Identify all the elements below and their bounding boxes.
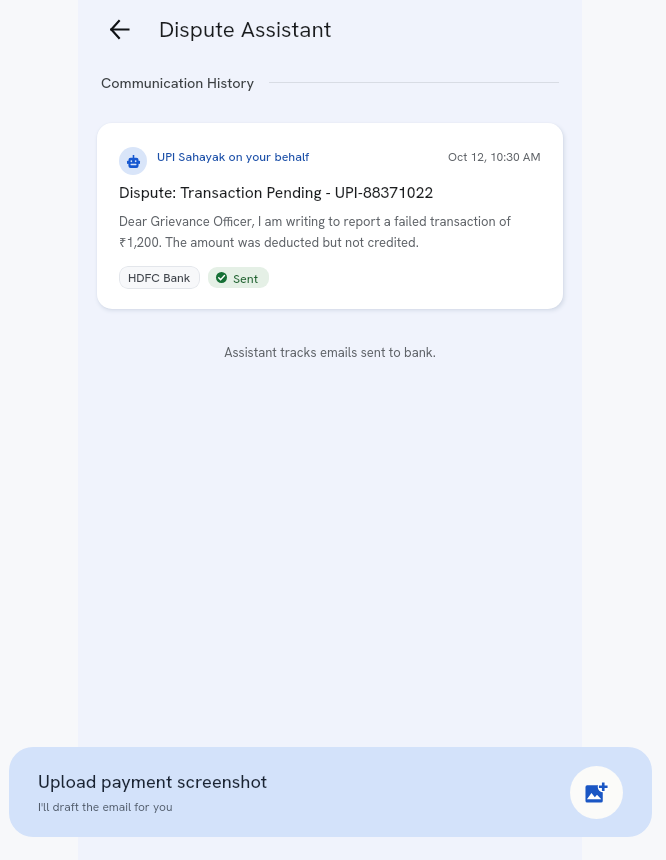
- staticText: I'll draft the email for you: [38, 799, 173, 815]
- staticText: Assistant tracks emails sent to bank.: [78, 344, 582, 361]
- button[interactable]: Add photo: [570, 766, 623, 819]
- staticText: Sent: [233, 270, 259, 286]
- staticText: Dispute Assistant: [159, 15, 332, 44]
- staticText: HDFC Bank: [128, 270, 191, 286]
- staticText: Dear Grievance Officer, I am writing to …: [119, 213, 541, 251]
- button[interactable]: UPI Sahayak on your behalf: [97, 123, 563, 309]
- button[interactable]: Sent: [208, 267, 269, 288]
- staticText: Upload payment screenshot: [38, 770, 268, 794]
- button[interactable]: Back: [97, 7, 141, 51]
- button[interactable]: HDFC Bank: [119, 266, 200, 289]
- staticText: UPI Sahayak on your behalf: [157, 149, 310, 165]
- button[interactable]: Upload payment screenshot: [9, 747, 652, 837]
- staticText: Communication History: [101, 73, 255, 92]
- staticText: Dispute: Transaction Pending - UPI-88371…: [119, 182, 434, 202]
- staticText: Oct 12, 10:30 AM: [448, 149, 541, 165]
